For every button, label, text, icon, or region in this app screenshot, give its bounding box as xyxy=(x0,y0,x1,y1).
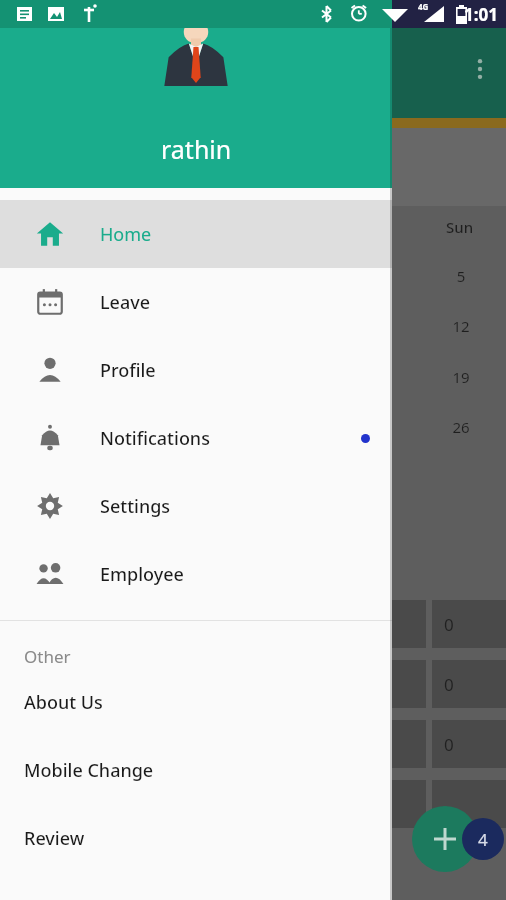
button[interactable]: 0 xyxy=(432,720,506,768)
button[interactable]: 4 xyxy=(462,818,504,860)
button[interactable]: Profile xyxy=(0,336,392,404)
button[interactable]: Settings xyxy=(0,472,392,540)
staticText: Settings xyxy=(100,494,171,519)
button[interactable]: Add xyxy=(412,806,478,872)
button[interactable]: Review xyxy=(0,804,392,872)
staticText: Review xyxy=(24,826,85,851)
button[interactable]: 0 xyxy=(432,660,506,708)
staticText: Home xyxy=(100,222,152,247)
staticText: 0 xyxy=(444,673,454,696)
button[interactable]: Employee xyxy=(0,540,392,608)
button[interactable]: Mobile Change xyxy=(0,736,392,804)
staticText: Other xyxy=(24,645,71,668)
button[interactable]: 0 xyxy=(432,600,506,648)
staticText: 1:01 xyxy=(464,3,498,26)
staticText: Employee xyxy=(100,562,184,587)
staticText: Leave xyxy=(100,290,151,315)
button[interactable]: Notifications xyxy=(0,404,392,472)
button[interactable]: Leave xyxy=(0,268,392,336)
staticText: Profile xyxy=(100,358,156,383)
staticText: 12 xyxy=(440,316,482,336)
button[interactable]: Home xyxy=(0,200,392,268)
staticText: 4G xyxy=(418,1,429,12)
staticText: rathin xyxy=(161,132,232,166)
staticText: 19 xyxy=(440,367,482,387)
staticText: 4 xyxy=(478,828,488,851)
staticText: Sun xyxy=(446,217,474,237)
staticText: 0 xyxy=(444,613,454,636)
staticText: Mobile Change xyxy=(24,758,154,783)
staticText: 26 xyxy=(440,417,482,437)
button[interactable]: More options xyxy=(466,55,494,83)
button[interactable] xyxy=(432,780,506,828)
staticText: 5 xyxy=(440,266,482,286)
staticText: 0 xyxy=(444,733,454,756)
staticText: About Us xyxy=(24,690,103,715)
staticText: Notifications xyxy=(100,426,210,451)
button[interactable]: About Us xyxy=(0,668,392,736)
